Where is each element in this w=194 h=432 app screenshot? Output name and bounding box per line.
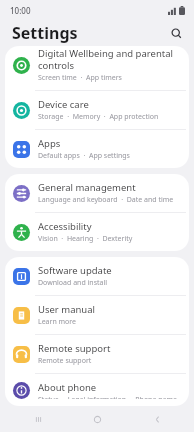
button[interactable]: Remote support [5, 335, 189, 373]
staticText: Accessibility [38, 220, 92, 233]
staticText: 10:00 [10, 5, 31, 16]
button[interactable]: Apps [5, 130, 189, 168]
button[interactable]: Device care [5, 91, 189, 129]
staticText: User manual [38, 303, 95, 316]
button[interactable]: Recents [16, 406, 60, 432]
button[interactable]: Software update [5, 257, 189, 295]
staticText: About phone [38, 381, 97, 394]
button[interactable]: Digital Wellbeing and parental controls [5, 46, 189, 90]
staticText: Software update [38, 264, 112, 277]
button[interactable]: General management [5, 174, 189, 212]
button[interactable]: About phone [5, 374, 189, 406]
staticText: Default apps · App settings [38, 151, 130, 161]
staticText: Device care [38, 98, 89, 111]
button[interactable]: Search [165, 22, 187, 44]
staticText: Learn more [38, 317, 77, 327]
staticText: Storage · Memory · App protection [38, 112, 159, 122]
staticText: Apps [38, 137, 61, 150]
staticText: Settings [12, 22, 78, 44]
button[interactable]: Home [75, 406, 119, 432]
staticText: Status · Legal information · Phone name [38, 395, 177, 399]
staticText: Remote support [38, 356, 92, 366]
staticText: Download and install [38, 278, 108, 288]
button[interactable]: Accessibility [5, 213, 189, 251]
staticText: General management [38, 181, 136, 194]
button[interactable]: User manual [5, 296, 189, 334]
staticText: Vision · Hearing · Dexterity [38, 234, 133, 244]
staticText: Screen time · App timers [38, 73, 122, 83]
staticText: Remote support [38, 342, 111, 355]
staticText: Language and keyboard · Date and time [38, 195, 174, 205]
staticText: Digital Wellbeing and parental controls [38, 47, 181, 72]
